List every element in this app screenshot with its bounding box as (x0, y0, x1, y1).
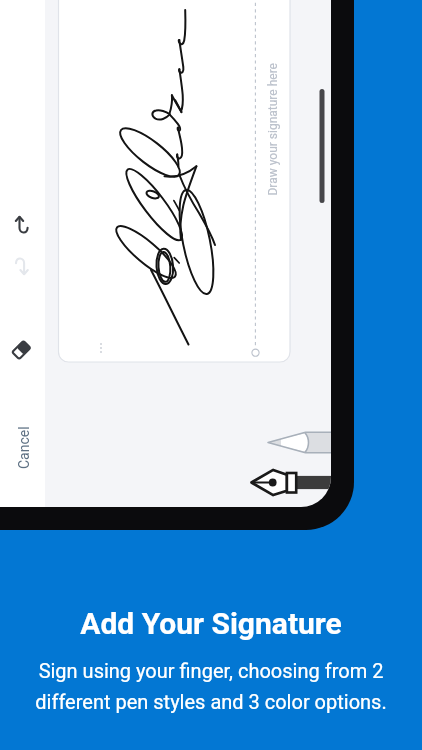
button[interactable]: Cancel (0, 415, 45, 479)
button[interactable]: Pencil style (255, 418, 355, 463)
button[interactable]: Undo (5, 208, 39, 242)
staticText: Draw your signature here (265, 62, 279, 195)
staticText: Add Your Signature (80, 606, 342, 641)
button[interactable]: Fountain pen style (240, 463, 355, 505)
staticText: Cancel (16, 426, 32, 469)
button[interactable]: Erase (5, 331, 39, 365)
staticText: Sign using your finger, choosing from 2 … (35, 659, 387, 713)
button[interactable]: Redo (5, 251, 39, 285)
